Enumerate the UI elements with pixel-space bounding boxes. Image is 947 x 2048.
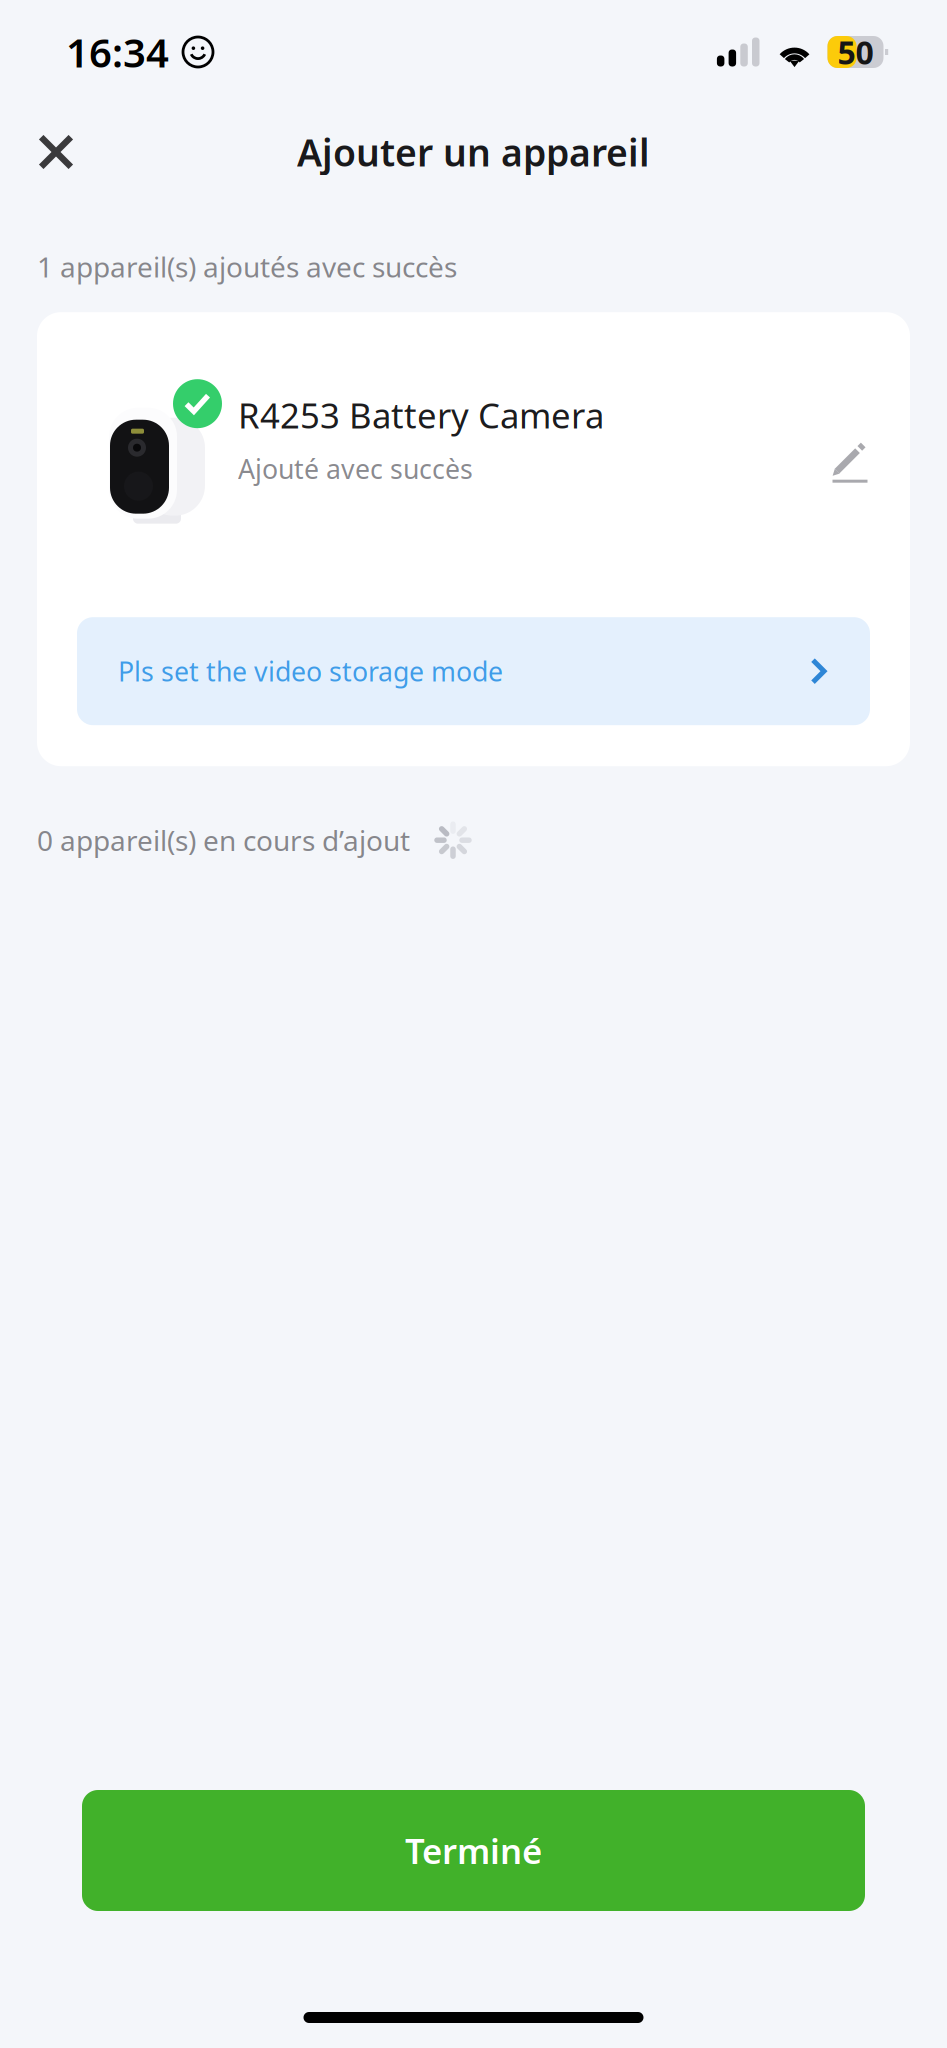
staticText: 16:34 — [66, 25, 169, 78]
button[interactable]: Renommer — [802, 403, 874, 475]
staticText: Pls set the video storage mode — [118, 653, 503, 689]
staticText: 1 appareil(s) ajoutés avec succès — [37, 248, 457, 285]
staticText: R4253 Battery Camera — [238, 392, 604, 438]
button[interactable]: Terminé — [82, 1790, 865, 1911]
button[interactable]: Fermer — [18, 114, 94, 190]
staticText: 0 appareil(s) en cours d’ajout — [37, 822, 410, 859]
button[interactable]: Pls set the video storage mode — [77, 617, 870, 725]
staticText: Ajouté avec succès — [238, 451, 473, 486]
staticText: 50 — [837, 31, 873, 73]
staticText: Terminé — [405, 1827, 542, 1873]
staticText: Ajouter un appareil — [297, 127, 650, 177]
